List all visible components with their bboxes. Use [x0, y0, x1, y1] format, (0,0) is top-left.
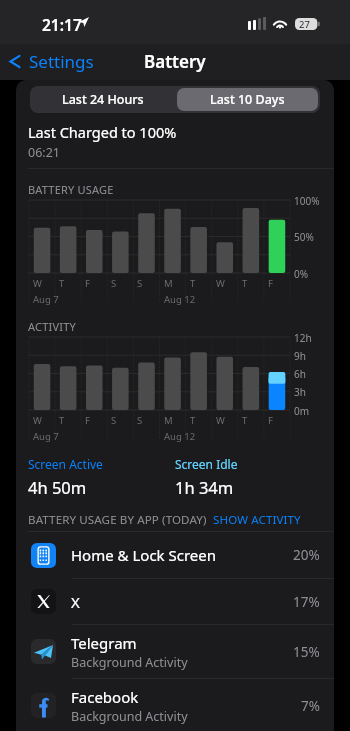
staticText: 1h 34m: [175, 476, 234, 498]
staticText: F: [268, 277, 273, 290]
staticText: W: [216, 277, 225, 290]
button[interactable]: Home & Lock Screen: [16, 532, 334, 578]
staticText: BATTERY USAGE: [28, 182, 114, 197]
staticText: 20%: [293, 546, 320, 564]
staticText: Aug 7: [33, 430, 59, 443]
staticText: Aug 12: [164, 430, 196, 443]
button[interactable]: Last 10 Days: [177, 88, 318, 111]
button[interactable]: Screen Idle: [175, 456, 238, 498]
staticText: T: [190, 414, 196, 427]
button[interactable]: Screen Active: [28, 456, 103, 498]
button[interactable]: SHOW ACTIVITY: [213, 512, 301, 528]
staticText: 3h: [294, 385, 306, 399]
staticText: 0m: [294, 404, 310, 418]
staticText: T: [59, 277, 65, 290]
staticText: 100%: [294, 194, 320, 208]
staticText: Facebook: [71, 687, 139, 707]
staticText: X: [71, 592, 80, 612]
staticText: W: [33, 277, 42, 290]
staticText: 17%: [293, 593, 320, 611]
staticText: T: [59, 414, 65, 427]
staticText: 0%: [294, 267, 309, 281]
button[interactable]: Last 24 Hours: [30, 86, 175, 113]
staticText: Aug 12: [164, 293, 196, 306]
button[interactable]: X: [16, 579, 334, 624]
staticText: Last Charged to 100%: [28, 122, 177, 142]
staticText: F: [268, 414, 273, 427]
staticText: 21:17: [42, 14, 82, 35]
staticText: Background Activity: [71, 708, 188, 725]
staticText: T: [190, 277, 196, 290]
staticText: W: [216, 414, 225, 427]
staticText: Battery: [144, 50, 206, 73]
staticText: 9h: [294, 349, 306, 363]
staticText: Telegram: [71, 633, 137, 653]
staticText: Home & Lock Screen: [71, 545, 217, 565]
staticText: W: [33, 414, 42, 427]
staticText: 12h: [294, 331, 312, 345]
staticText: Screen Active: [28, 456, 103, 472]
staticText: M: [164, 414, 173, 427]
staticText: 27: [299, 18, 310, 30]
button[interactable]: Telegram: [16, 625, 334, 678]
staticText: T: [242, 414, 248, 427]
staticText: 15%: [293, 643, 320, 661]
staticText: Last 24 Hours: [62, 91, 144, 108]
staticText: Background Activity: [71, 654, 188, 671]
staticText: Screen Idle: [175, 456, 238, 472]
staticText: 7%: [301, 697, 320, 715]
staticText: 6h: [294, 367, 306, 381]
staticText: S: [137, 277, 143, 290]
staticText: 06:21: [28, 144, 60, 161]
button[interactable]: Settings: [9, 50, 94, 73]
staticText: T: [242, 277, 248, 290]
staticText: S: [137, 414, 143, 427]
staticText: Settings: [29, 50, 94, 73]
staticText: SHOW ACTIVITY: [213, 512, 301, 528]
staticText: F: [85, 277, 90, 290]
staticText: S: [111, 414, 117, 427]
staticText: BATTERY USAGE BY APP (TODAY): [28, 512, 207, 528]
staticText: Aug 7: [33, 293, 59, 306]
staticText: F: [85, 414, 90, 427]
staticText: M: [164, 277, 173, 290]
staticText: 50%: [294, 230, 314, 244]
staticText: S: [111, 277, 117, 290]
button[interactable]: Facebook: [16, 679, 334, 731]
staticText: Last 10 Days: [210, 91, 285, 108]
staticText: 4h 50m: [28, 476, 87, 498]
staticText: ACTIVITY: [28, 319, 76, 334]
